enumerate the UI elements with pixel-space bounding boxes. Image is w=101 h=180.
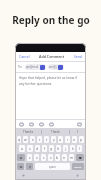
button[interactable]: w: [23, 136, 28, 143]
button[interactable]: Back: [21, 173, 26, 178]
button[interactable]: e: [30, 136, 35, 143]
staticText: u: [59, 137, 62, 142]
staticText: m: [70, 155, 74, 160]
staticText: Hope that helped, please let us know if …: [19, 76, 82, 80]
button[interactable]: I: [70, 128, 86, 135]
button[interactable]: u: [58, 136, 63, 143]
staticText: space: [49, 165, 57, 169]
staticText: b: [56, 155, 59, 160]
button[interactable]: h: [56, 145, 61, 152]
button[interactable]: l: [77, 145, 82, 152]
button[interactable]: Thanks: [15, 128, 41, 135]
staticText: g: [50, 146, 53, 151]
button[interactable]: q: [17, 136, 21, 143]
staticText: I: [77, 130, 79, 134]
button[interactable]: Thank: [42, 128, 69, 135]
staticText: i: [67, 137, 68, 142]
button[interactable]: jan@mail: [25, 64, 46, 70]
button[interactable]: Cancel: [18, 54, 31, 59]
button[interactable]: Voice input: [26, 163, 33, 170]
button[interactable]: b: [55, 154, 60, 161]
staticText: Cancel: [19, 54, 30, 59]
staticText: k: [72, 146, 74, 151]
button[interactable]: Space: [35, 163, 70, 170]
staticText: Reply on the go: [12, 13, 90, 27]
button[interactable]: More options: [77, 122, 82, 127]
staticText: y: [53, 137, 55, 142]
staticText: e: [32, 137, 34, 142]
button[interactable]: r: [37, 136, 42, 143]
staticText: j: [65, 146, 66, 151]
button[interactable]: Insert link: [49, 122, 54, 127]
staticText: w: [24, 137, 27, 142]
button[interactable]: z: [27, 154, 32, 161]
button[interactable]: Format text: [19, 122, 24, 127]
button[interactable]: g: [49, 145, 54, 152]
button[interactable]: o: [72, 136, 77, 143]
staticText: f: [44, 146, 46, 151]
staticText: l: [79, 146, 80, 151]
staticText: am@j: [49, 65, 57, 69]
button[interactable]: m: [69, 154, 74, 161]
button[interactable]: v: [48, 154, 53, 161]
button[interactable]: f: [42, 145, 47, 152]
staticText: h: [57, 146, 60, 151]
button[interactable]: Shift: [17, 154, 25, 161]
button[interactable]: am@j: [48, 64, 64, 70]
button[interactable]: Hide keyboard: [75, 173, 80, 178]
staticText: Send: [74, 54, 82, 59]
staticText: Thank: [51, 130, 60, 134]
button[interactable]: s: [27, 145, 33, 152]
button[interactable]: Send: [73, 54, 83, 59]
button[interactable]: Return: [72, 163, 84, 170]
button[interactable]: Hope that helped, please let us know if …: [19, 76, 82, 86]
staticText: x: [36, 155, 38, 160]
staticText: p: [80, 137, 83, 142]
staticText: return: [74, 165, 82, 168]
staticText: s: [29, 146, 31, 151]
staticText: n: [63, 155, 66, 160]
button[interactable]: n: [62, 154, 67, 161]
staticText: r: [39, 137, 41, 142]
button[interactable]: Insert photo: [39, 122, 44, 127]
staticText: jan@mail: [26, 65, 39, 69]
button[interactable]: Attach file: [29, 122, 34, 127]
staticText: t: [46, 137, 48, 142]
staticText: z: [29, 155, 31, 160]
staticText: c: [43, 155, 45, 160]
button[interactable]: t: [44, 136, 49, 143]
button[interactable]: a: [19, 145, 25, 152]
button[interactable]: k: [70, 145, 75, 152]
button[interactable]: j: [63, 145, 68, 152]
staticText: a: [21, 146, 23, 151]
button[interactable]: Backspace: [76, 154, 84, 161]
button[interactable]: i: [65, 136, 70, 143]
staticText: v: [50, 155, 52, 160]
staticText: any further questions.: [19, 82, 53, 86]
staticText: Thanks: [23, 130, 34, 134]
staticText: Add Comment: [39, 54, 65, 59]
staticText: q: [18, 137, 21, 142]
staticText: d: [36, 146, 39, 151]
button[interactable]: Symbols: [17, 163, 24, 170]
button[interactable]: x: [34, 154, 39, 161]
button[interactable]: c: [41, 154, 46, 161]
button[interactable]: p: [79, 136, 84, 143]
staticText: o: [73, 137, 76, 142]
button[interactable]: y: [51, 136, 56, 143]
staticText: To:: [18, 65, 23, 69]
button[interactable]: d: [35, 145, 40, 152]
